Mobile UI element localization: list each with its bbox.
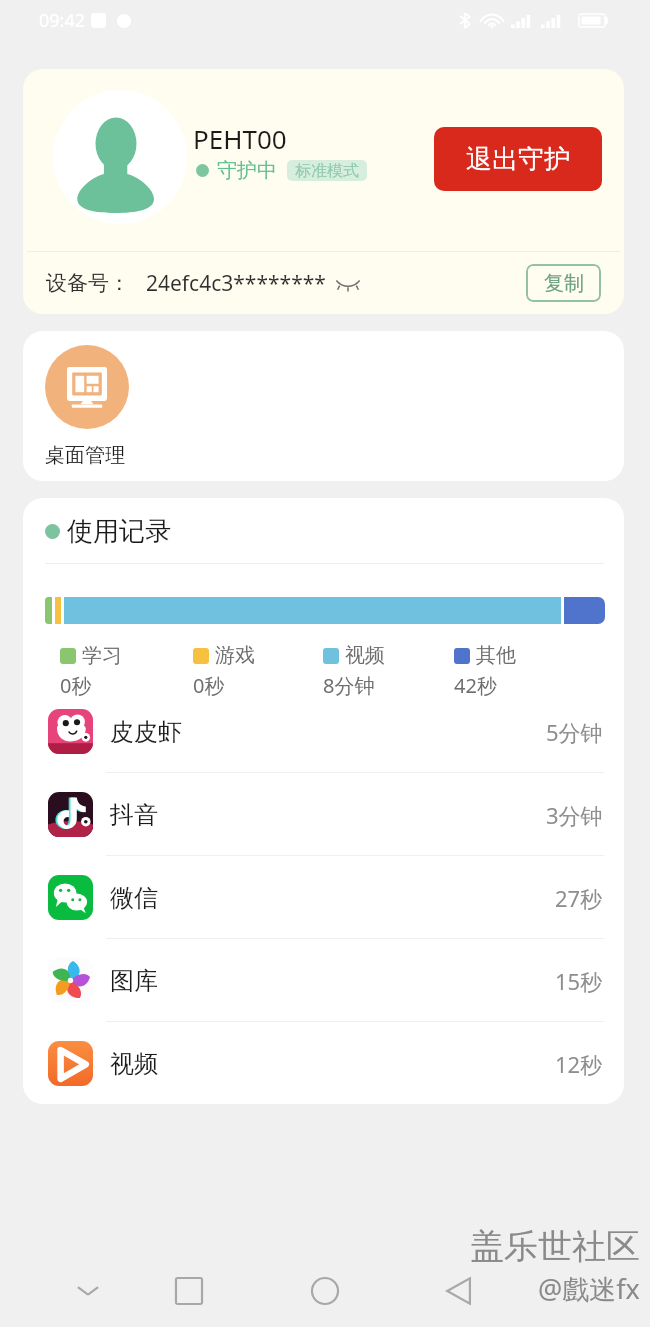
- staticText: 8分钟: [323, 672, 375, 699]
- staticText: 12秒: [555, 1049, 603, 1079]
- staticText: 视频: [110, 1049, 158, 1079]
- staticText: 微信: [110, 883, 158, 913]
- button[interactable]: 微信: [23, 856, 624, 939]
- staticText: 5分钟: [546, 717, 603, 747]
- staticText: 标准模式: [295, 161, 359, 181]
- staticText: PEHT00: [193, 121, 287, 156]
- button[interactable]: 抖音: [23, 773, 624, 856]
- staticText: 3分钟: [546, 800, 603, 830]
- button[interactable]: 退出守护: [434, 127, 602, 191]
- staticText: 守护中: [217, 158, 277, 183]
- staticText: 视频: [345, 643, 385, 668]
- button[interactable]: 复制: [526, 264, 601, 302]
- staticText: 0秒: [193, 672, 225, 699]
- staticText: 使用记录: [67, 515, 171, 548]
- button[interactable]: Hide keyboard: [61, 1264, 115, 1318]
- staticText: 退出守护: [466, 143, 570, 176]
- button[interactable]: Recent apps: [162, 1264, 216, 1318]
- staticText: 桌面管理: [45, 443, 125, 468]
- staticText: 学习: [82, 643, 122, 668]
- staticText: 抖音: [110, 800, 158, 830]
- button[interactable]: Home: [298, 1264, 352, 1318]
- staticText: 皮皮虾: [110, 717, 182, 747]
- staticText: 42秒: [454, 672, 497, 699]
- button[interactable]: 皮皮虾: [23, 690, 624, 773]
- button[interactable]: 图库: [23, 939, 624, 1022]
- staticText: 0秒: [60, 672, 92, 699]
- staticText: @戲迷fx: [538, 1270, 640, 1307]
- staticText: 复制: [544, 271, 584, 296]
- staticText: 游戏: [215, 643, 255, 668]
- staticText: 09:42: [39, 8, 86, 33]
- staticText: 设备号：: [46, 270, 130, 296]
- button[interactable]: 视频: [23, 1022, 624, 1104]
- button[interactable]: Back: [432, 1264, 486, 1318]
- staticText: 27秒: [555, 883, 603, 913]
- staticText: 盖乐世社区: [470, 1225, 640, 1268]
- staticText: 15秒: [555, 966, 603, 996]
- staticText: 24efc4c3********: [146, 269, 326, 298]
- button[interactable]: 桌面管理: [45, 345, 129, 468]
- staticText: 其他: [476, 643, 516, 668]
- staticText: 图库: [110, 966, 158, 996]
